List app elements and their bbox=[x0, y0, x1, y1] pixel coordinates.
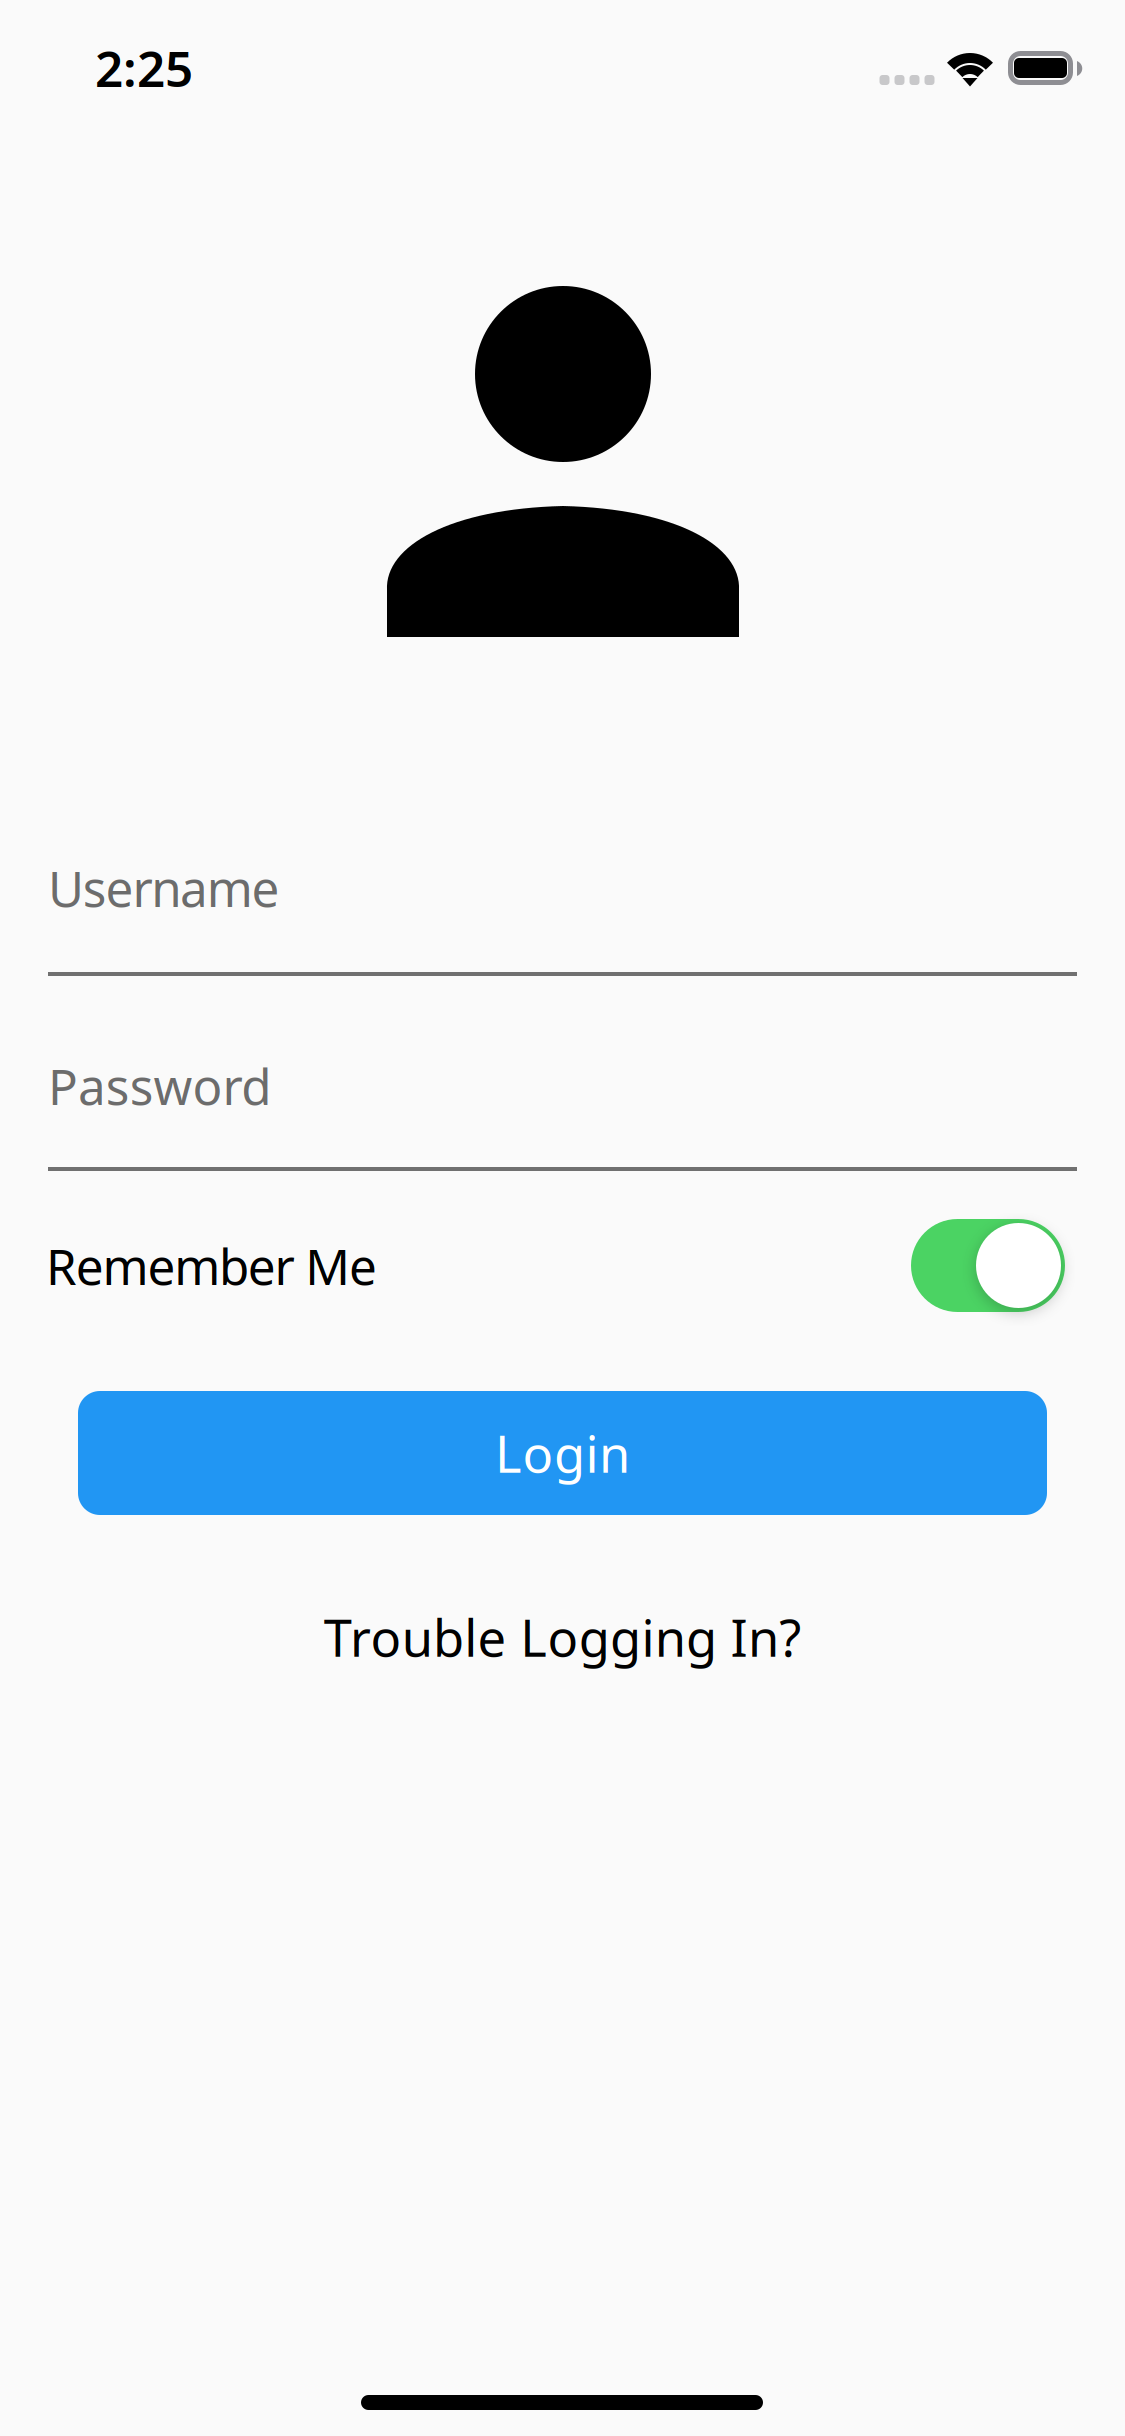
button[interactable]: Username bbox=[48, 830, 1077, 976]
staticText: Remember Me bbox=[46, 1233, 377, 1298]
staticText: Username bbox=[48, 855, 280, 920]
button[interactable]: Remember Me, on bbox=[911, 1219, 1065, 1312]
staticText: 2:25 bbox=[95, 35, 193, 100]
button[interactable]: Password bbox=[48, 1025, 1077, 1171]
staticText: Login bbox=[495, 1419, 630, 1487]
button[interactable]: Remember Me bbox=[48, 1206, 1077, 1324]
button[interactable]: Trouble Logging In? bbox=[0, 1592, 1125, 1682]
staticText: Password bbox=[48, 1053, 271, 1118]
button[interactable]: Login bbox=[78, 1391, 1047, 1515]
staticText: Trouble Logging In? bbox=[324, 1603, 801, 1671]
